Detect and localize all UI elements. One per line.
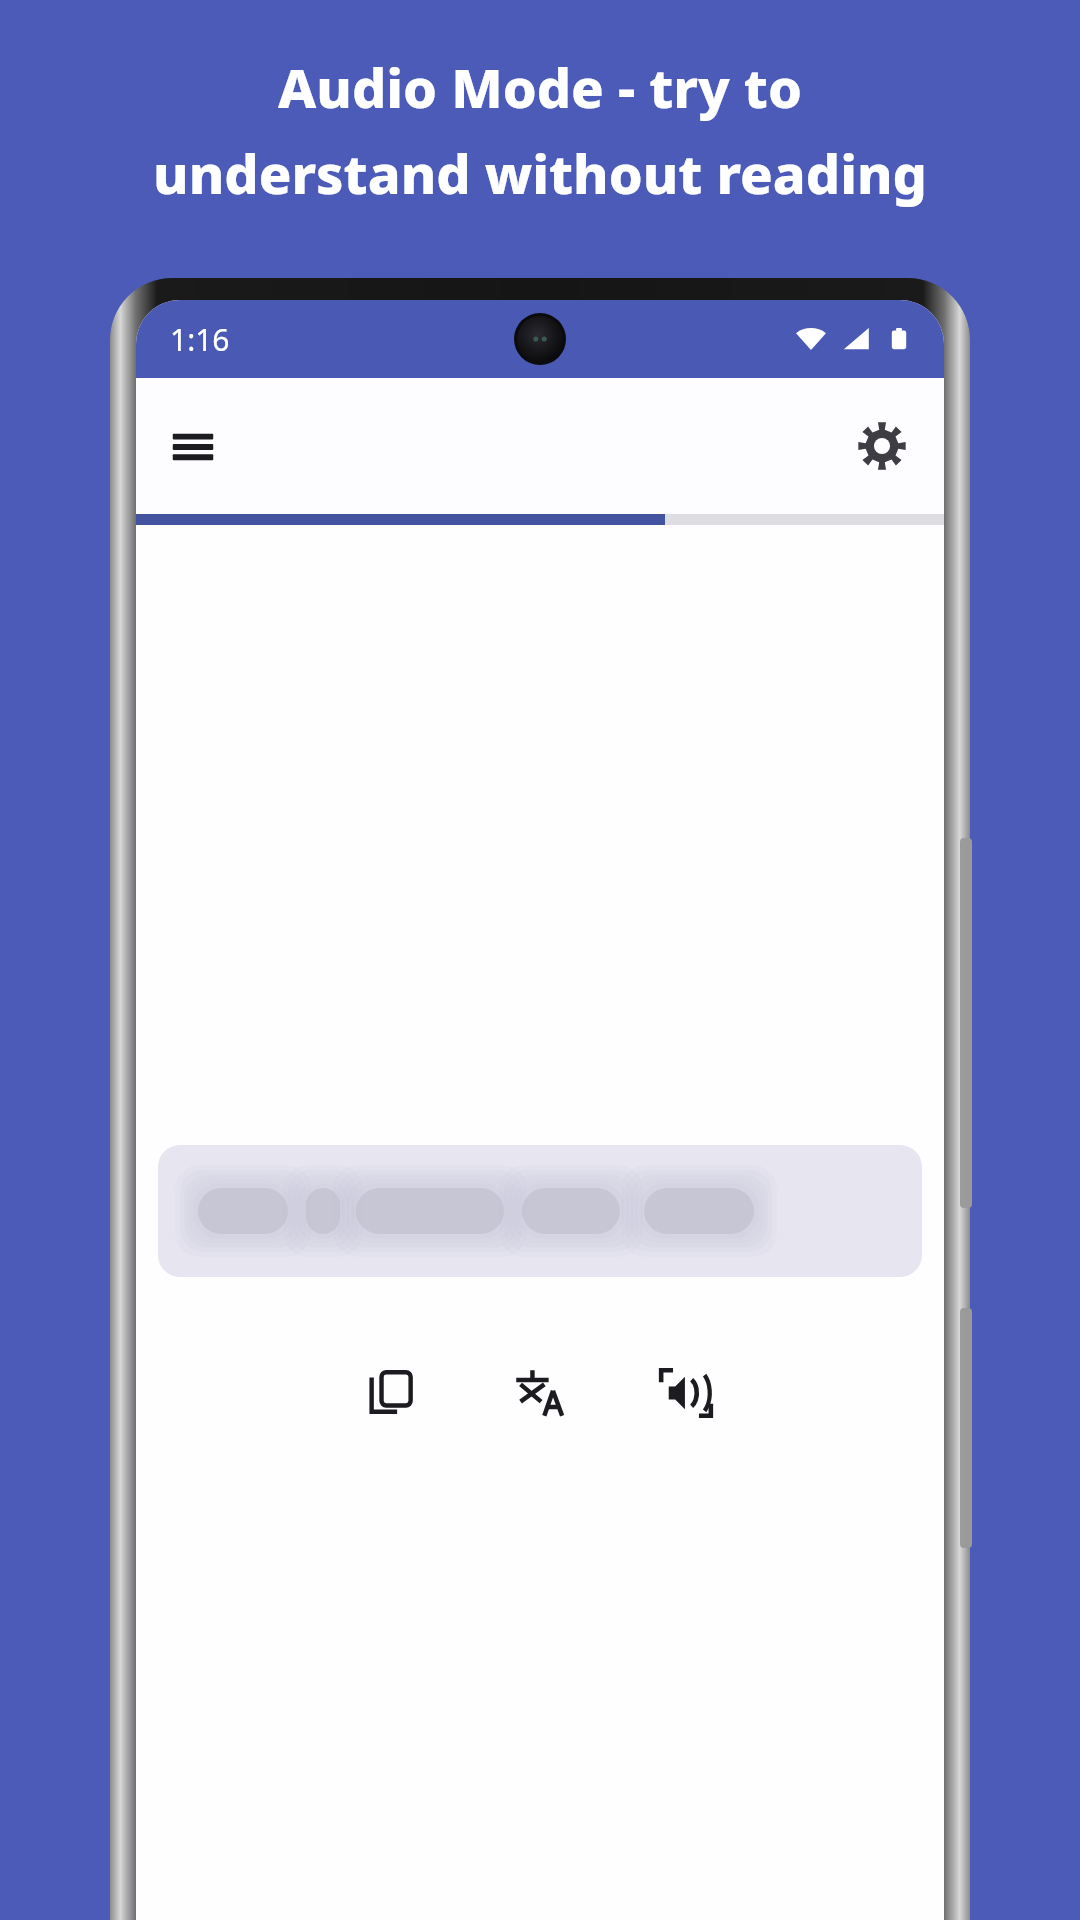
button[interactable]: Settings [842, 406, 922, 486]
staticText: understand without reading [153, 136, 927, 210]
staticText: Audio Mode - try to [278, 50, 802, 124]
button[interactable] [158, 1145, 922, 1277]
button[interactable]: Menu [154, 407, 232, 485]
button[interactable]: Read aloud [634, 1341, 738, 1445]
button[interactable]: Copy [342, 1341, 446, 1445]
button[interactable]: Translate [488, 1341, 592, 1445]
staticText: 1:16 [170, 319, 230, 360]
